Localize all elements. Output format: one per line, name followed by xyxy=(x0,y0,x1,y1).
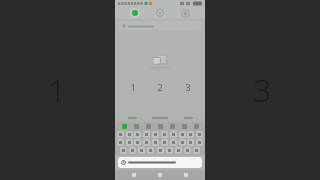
button[interactable]: Key 1 xyxy=(126,131,133,138)
button[interactable]: Toolbar action 4 xyxy=(169,123,175,129)
button[interactable]: Menu xyxy=(180,8,190,18)
staticText: 3 xyxy=(185,81,191,93)
button[interactable]: Key 2 xyxy=(134,131,141,138)
button[interactable]: Account xyxy=(130,8,140,18)
button[interactable]: Recents xyxy=(179,170,193,180)
button[interactable]: Key 8 xyxy=(187,139,194,146)
button[interactable]: Key 6 xyxy=(170,139,177,146)
button[interactable]: Key 2 xyxy=(134,139,141,146)
button[interactable]: Toolbar action 3 xyxy=(157,123,163,129)
button[interactable]: Key 3 xyxy=(147,147,154,154)
button[interactable]: Info xyxy=(155,8,165,18)
button[interactable]: 1 xyxy=(123,80,143,94)
button[interactable]: Key 7 xyxy=(179,131,186,138)
button[interactable]: Toolbar action 1 xyxy=(133,123,139,129)
button[interactable]: Key 6 xyxy=(175,147,182,154)
button[interactable]: Key 4 xyxy=(152,131,159,138)
button[interactable]: Toolbar action 5 xyxy=(181,123,187,129)
button[interactable]: 3 xyxy=(178,80,198,94)
button[interactable]: Key 2 xyxy=(138,147,145,154)
button[interactable]: Suggestion 1 xyxy=(149,116,171,120)
button[interactable]: Key 0 xyxy=(120,147,127,154)
button[interactable]: Key 5 xyxy=(161,131,168,138)
button[interactable]: Suggestion 0 xyxy=(125,116,140,120)
button[interactable]: Key 1 xyxy=(126,139,133,146)
button[interactable]: Key 9 xyxy=(196,139,203,146)
button[interactable]: Home xyxy=(153,170,167,180)
button[interactable]: Key 4 xyxy=(152,139,159,146)
button[interactable]: Toolbar action 6 xyxy=(193,123,199,129)
button[interactable] xyxy=(119,21,201,30)
button[interactable]: Key 9 xyxy=(196,131,203,138)
button[interactable]: Key 3 xyxy=(143,139,150,146)
button[interactable]: Key 5 xyxy=(166,147,173,154)
button[interactable]: Key 3 xyxy=(143,131,150,138)
button[interactable]: Toolbar action 0 xyxy=(121,123,127,129)
staticText: 3 xyxy=(253,68,272,112)
button[interactable]: Key 7 xyxy=(179,139,186,146)
button[interactable]: Key 7 xyxy=(184,147,191,154)
button[interactable]: Key 0 xyxy=(117,131,124,138)
button[interactable]: Suggestion 2 xyxy=(181,116,196,120)
staticText: 2 xyxy=(157,81,163,93)
staticText: 1 xyxy=(48,68,67,112)
button[interactable]: Toolbar action 2 xyxy=(145,123,151,129)
staticText: 1 xyxy=(130,81,136,93)
button[interactable]: Back xyxy=(127,170,141,180)
button[interactable]: Key 4 xyxy=(157,147,164,154)
button[interactable]: Key 8 xyxy=(187,131,194,138)
button[interactable]: 2 xyxy=(150,80,170,94)
button[interactable]: Key 1 xyxy=(129,147,136,154)
button[interactable]: Key 6 xyxy=(170,131,177,138)
button[interactable]: Key 0 xyxy=(117,139,124,146)
button[interactable]: Key 5 xyxy=(161,139,168,146)
button[interactable]: Key 8 xyxy=(193,147,200,154)
button[interactable] xyxy=(118,157,202,168)
